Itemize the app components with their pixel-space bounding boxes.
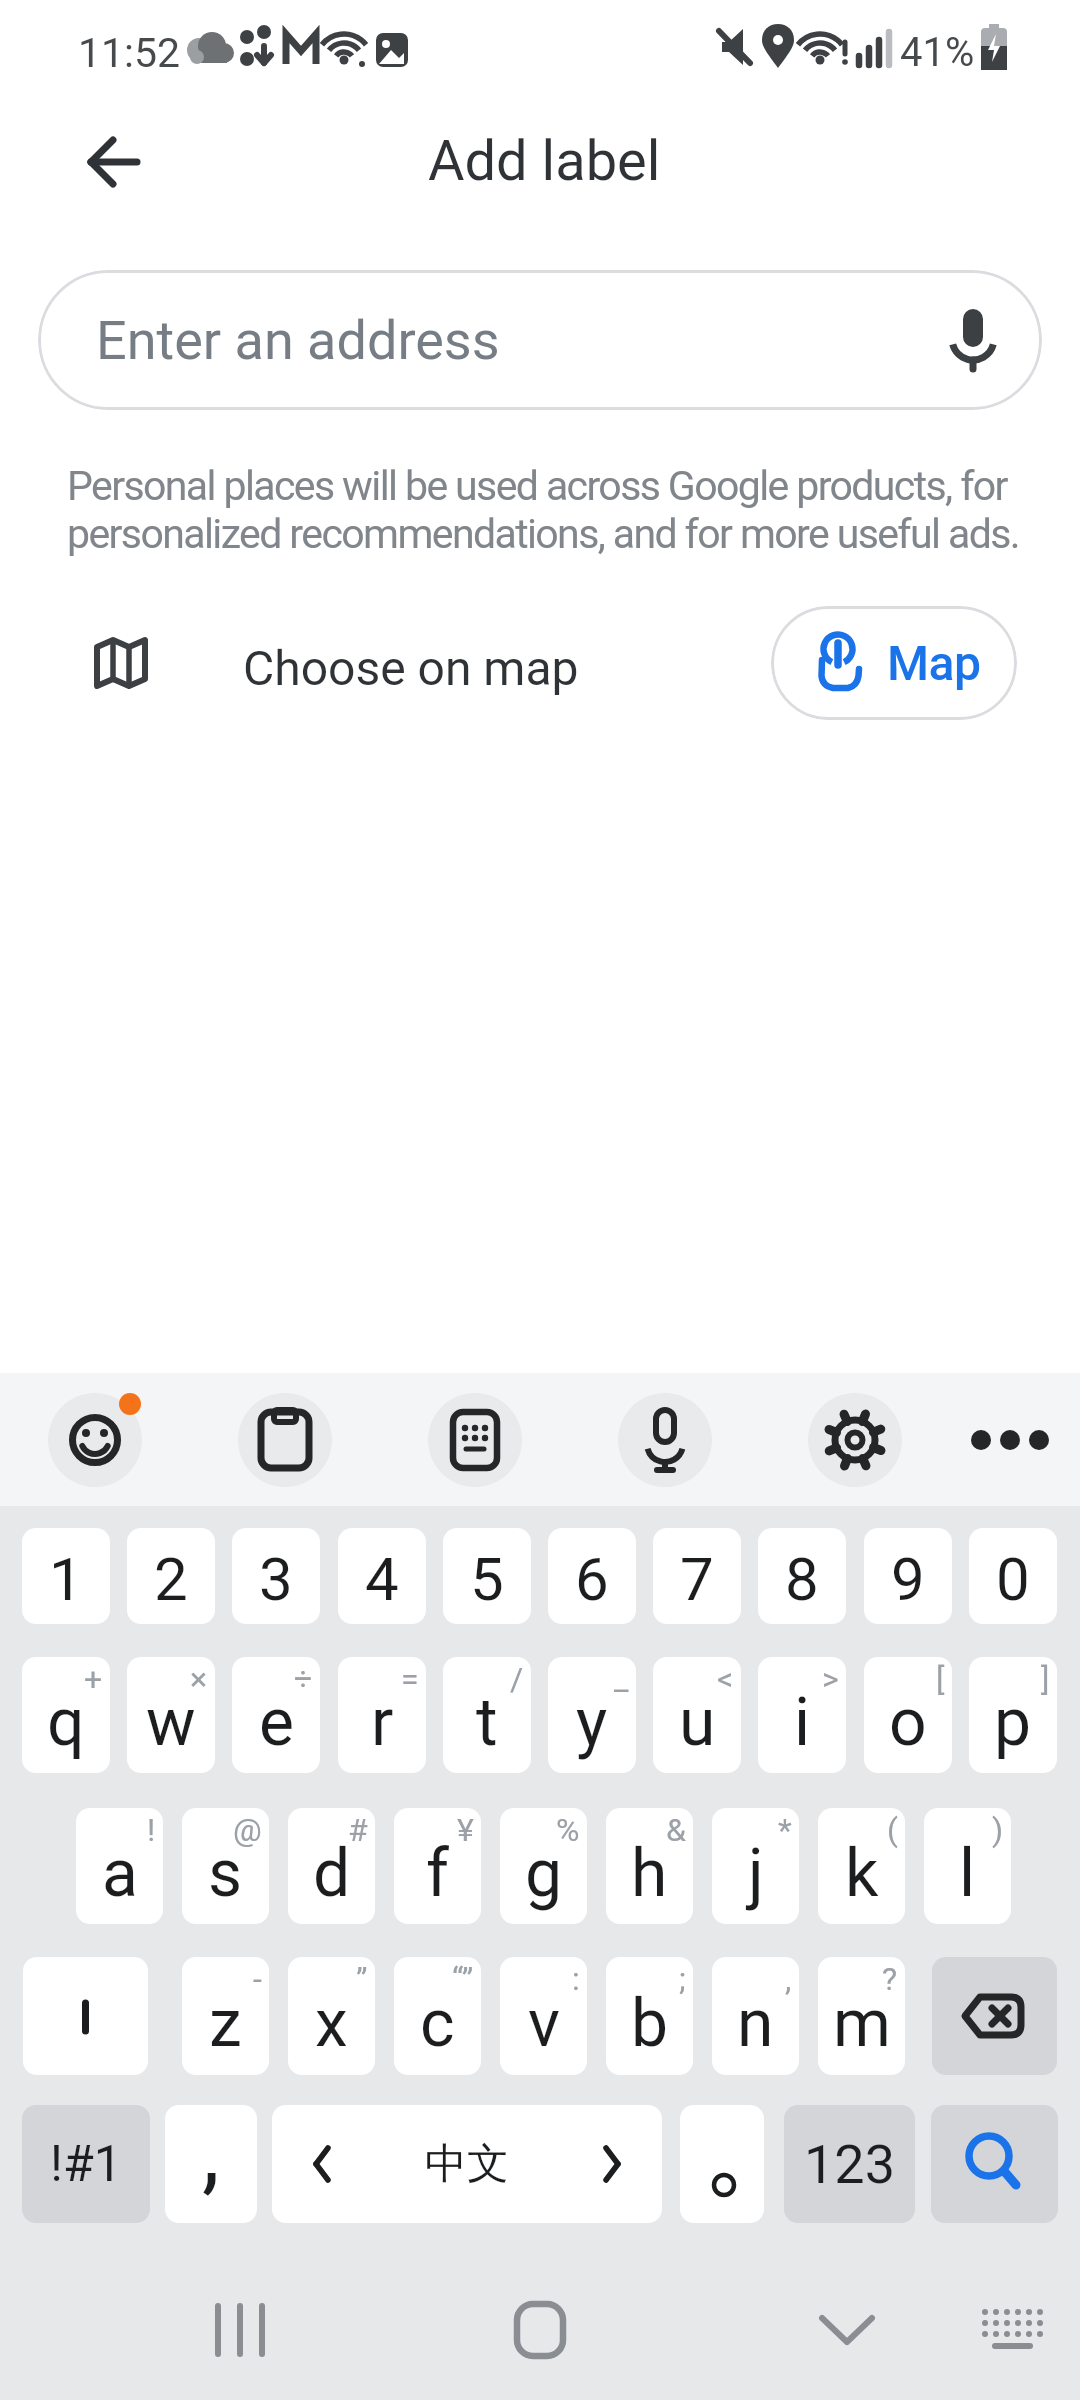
staticText: 123	[804, 2133, 896, 2196]
staticText: u	[679, 1684, 716, 1761]
button[interactable]	[428, 1393, 522, 1487]
staticText: 6	[575, 1544, 609, 1614]
staticText: “”	[452, 1960, 474, 1998]
staticText: h	[631, 1835, 668, 1912]
button[interactable]: ×	[127, 1657, 215, 1773]
button[interactable]: !	[76, 1808, 163, 1924]
button[interactable]: 123	[784, 2105, 915, 2223]
staticText: )	[992, 1811, 1004, 1849]
staticText: %	[556, 1811, 580, 1849]
staticText: r	[371, 1684, 394, 1761]
button[interactable]: 8	[758, 1528, 846, 1624]
staticText: (	[887, 1811, 898, 1849]
button[interactable]: +	[22, 1657, 110, 1773]
staticText: s	[208, 1835, 243, 1912]
staticText: ,	[202, 2105, 220, 2205]
button[interactable]: !#1	[22, 2105, 150, 2223]
button[interactable]	[680, 2105, 764, 2223]
staticText: 4	[365, 1544, 399, 1614]
button[interactable]: %	[500, 1808, 587, 1924]
button[interactable]: 2	[127, 1528, 215, 1624]
staticText: 5	[470, 1544, 504, 1614]
staticText: ”	[356, 1960, 368, 1998]
button[interactable]: 9	[864, 1528, 952, 1624]
button[interactable]: [	[864, 1657, 952, 1773]
button[interactable]	[932, 1957, 1057, 2075]
button[interactable]: 3	[232, 1528, 320, 1624]
button[interactable]: 6	[548, 1528, 636, 1624]
button[interactable]: >	[758, 1657, 846, 1773]
button[interactable]: ,	[712, 1957, 799, 2075]
staticText: j	[748, 1835, 764, 1912]
button[interactable]	[68, 116, 158, 206]
staticText: e	[259, 1684, 294, 1761]
staticText: ;	[679, 1960, 686, 1998]
button[interactable]: 5	[443, 1528, 531, 1624]
staticText: +	[84, 1660, 103, 1698]
staticText: a	[102, 1835, 138, 1912]
button[interactable]: Enter an address	[38, 270, 1042, 410]
button[interactable]: :	[500, 1957, 587, 2075]
button[interactable]: ,	[165, 2105, 257, 2223]
staticText: =	[401, 1660, 419, 1698]
button[interactable]	[238, 1393, 332, 1487]
button[interactable]: @	[182, 1808, 269, 1924]
button[interactable]: )	[924, 1808, 1011, 1924]
staticText: 2	[154, 1544, 188, 1614]
button[interactable]: ÷	[232, 1657, 320, 1773]
button[interactable]: Map	[771, 606, 1017, 720]
button[interactable]: #	[288, 1808, 375, 1924]
button[interactable]: =	[338, 1657, 426, 1773]
button[interactable]	[48, 1393, 142, 1487]
staticText: c	[420, 1985, 455, 2062]
staticText: >	[822, 1660, 839, 1698]
button[interactable]: ]	[969, 1657, 1057, 1773]
button[interactable]: _	[548, 1657, 636, 1773]
button[interactable]	[618, 1393, 712, 1487]
staticText: k	[845, 1835, 879, 1912]
button[interactable]	[23, 1957, 148, 2075]
button[interactable]: (	[818, 1808, 905, 1924]
button[interactable]: “”	[394, 1957, 481, 2075]
staticText: i	[794, 1684, 811, 1761]
button[interactable]	[960, 2280, 1080, 2385]
button[interactable]: 4	[338, 1528, 426, 1624]
staticText: ?	[882, 1960, 898, 1998]
staticText: Personal places will be used across Goog…	[67, 462, 1007, 510]
button[interactable]: 0	[969, 1528, 1057, 1624]
button[interactable]	[480, 2280, 610, 2385]
staticText: <	[717, 1660, 734, 1698]
button[interactable]	[962, 1393, 1056, 1487]
button[interactable]: 7	[653, 1528, 741, 1624]
button[interactable]: -	[182, 1957, 269, 2075]
button[interactable]: ”	[288, 1957, 375, 2075]
button[interactable]: Choose on map	[70, 592, 710, 732]
button[interactable]: *	[712, 1808, 799, 1924]
staticText: ,	[785, 1960, 792, 1998]
staticText: 7	[680, 1544, 714, 1614]
staticText: Add label	[428, 128, 661, 194]
button[interactable]	[808, 1393, 902, 1487]
staticText: o	[889, 1684, 927, 1761]
staticText: b	[631, 1985, 669, 2062]
button[interactable]: /	[443, 1657, 531, 1773]
button[interactable]	[931, 2105, 1058, 2223]
button[interactable]	[170, 2280, 300, 2385]
staticText: 8	[785, 1544, 819, 1614]
button[interactable]: <	[653, 1657, 741, 1773]
staticText: 1	[49, 1544, 83, 1614]
staticText: m	[833, 1985, 891, 2062]
button[interactable]	[790, 2280, 920, 2385]
staticText: [	[936, 1660, 945, 1698]
button[interactable]: ¥	[394, 1808, 481, 1924]
button[interactable]: ?	[818, 1957, 905, 2075]
staticText: ÷	[294, 1660, 313, 1698]
staticText: ×	[190, 1660, 208, 1698]
button[interactable]: 1	[22, 1528, 110, 1624]
button[interactable]: ;	[606, 1957, 693, 2075]
button[interactable]: 中文	[272, 2105, 662, 2223]
staticText: personalized recommendations, and for mo…	[67, 510, 1019, 558]
button[interactable]: &	[606, 1808, 693, 1924]
staticText: d	[313, 1835, 351, 1912]
staticText: p	[994, 1684, 1032, 1761]
